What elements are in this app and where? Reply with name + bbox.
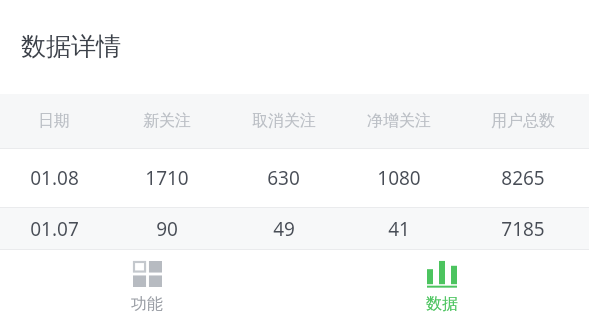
staticText: 数据 — [426, 294, 458, 314]
button[interactable]: 数据 — [294, 250, 589, 322]
staticText: 1710 — [145, 165, 189, 191]
staticText: 新关注 — [143, 111, 191, 131]
staticText: 取消关注 — [252, 111, 316, 131]
staticText: 净增关注 — [367, 111, 431, 131]
staticText: 49 — [273, 216, 295, 242]
staticText: 功能 — [131, 294, 163, 314]
staticText: 用户总数 — [491, 111, 555, 131]
staticText: 1080 — [377, 165, 421, 191]
staticText: 8265 — [501, 165, 545, 191]
staticText: 01.07 — [30, 216, 79, 242]
staticText: 41 — [388, 216, 410, 242]
staticText: 7185 — [501, 216, 545, 242]
staticText: 数据详情 — [21, 31, 121, 62]
button[interactable]: 功能 — [0, 250, 294, 322]
staticText: 01.08 — [30, 165, 79, 191]
staticText: 日期 — [38, 111, 70, 131]
staticText: 630 — [267, 165, 300, 191]
staticText: 90 — [156, 216, 178, 242]
